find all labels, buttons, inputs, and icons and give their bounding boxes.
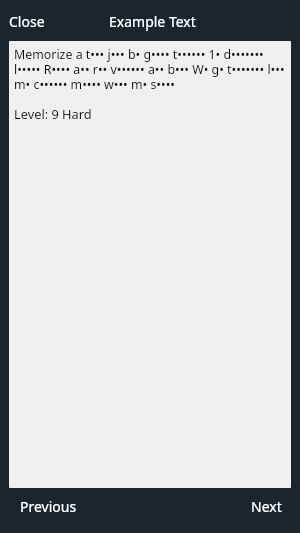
staticText: Level: 9 Hard [14,105,92,122]
button[interactable]: Previous [14,493,83,520]
staticText: Previous [20,497,77,516]
button[interactable]: Close [3,6,51,37]
staticText: Memorize a t••• j••• b• g•••• t•••••• 1•… [14,46,286,92]
button[interactable]: Next [245,493,288,520]
staticText: Example Text [109,12,196,31]
staticText: Next [251,497,282,516]
staticText: Close [9,12,45,31]
